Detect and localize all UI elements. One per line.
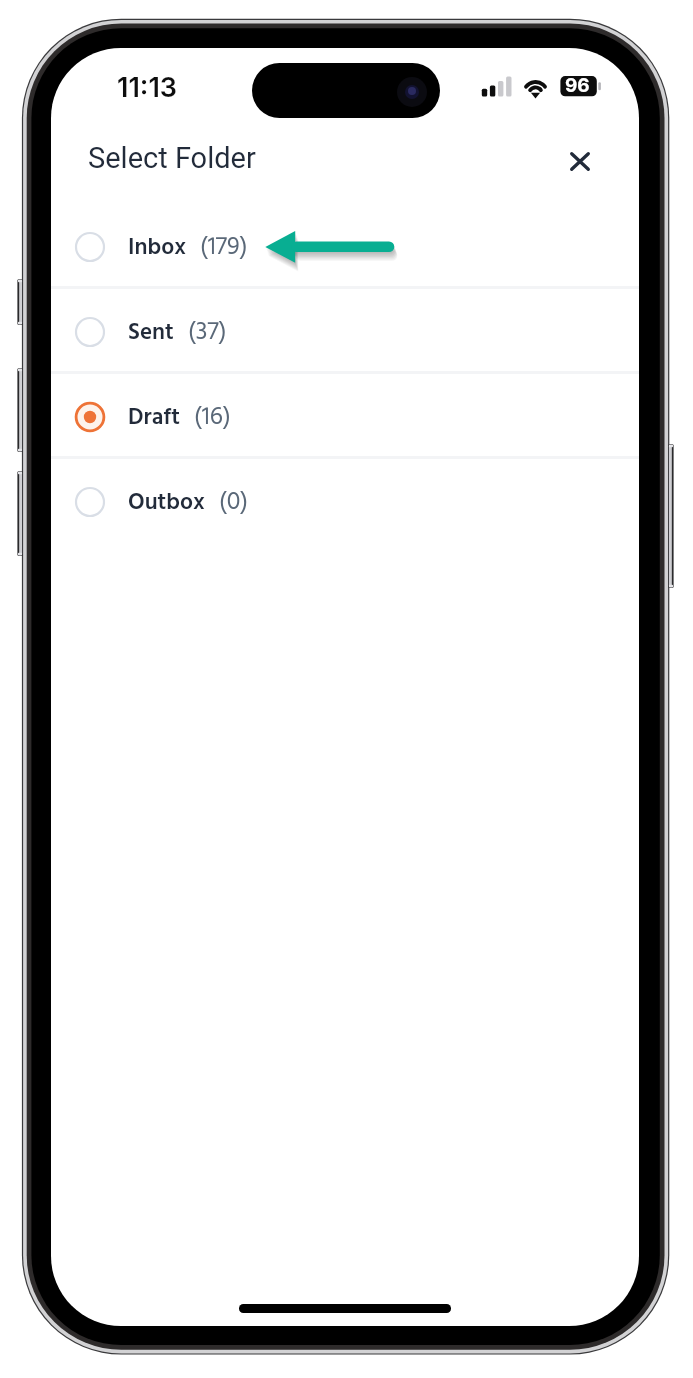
button[interactable]: Draft	[51, 374, 639, 459]
button[interactable]: Inbox	[51, 204, 639, 289]
staticText: 96	[565, 74, 590, 97]
button[interactable]: Close	[555, 136, 605, 186]
staticText: Select Folder	[88, 141, 256, 175]
staticText: (0)	[219, 483, 249, 523]
staticText: Outbox	[128, 485, 205, 522]
staticText: Inbox	[128, 230, 186, 267]
staticText: Draft	[128, 400, 180, 437]
staticText: (179)	[200, 228, 248, 268]
staticText: 11:13	[117, 71, 178, 104]
staticText: (37)	[188, 313, 227, 353]
staticText: Sent	[128, 315, 174, 352]
button[interactable]: Sent	[51, 289, 639, 374]
staticText: (16)	[194, 398, 231, 438]
button[interactable]: Outbox	[51, 459, 639, 544]
